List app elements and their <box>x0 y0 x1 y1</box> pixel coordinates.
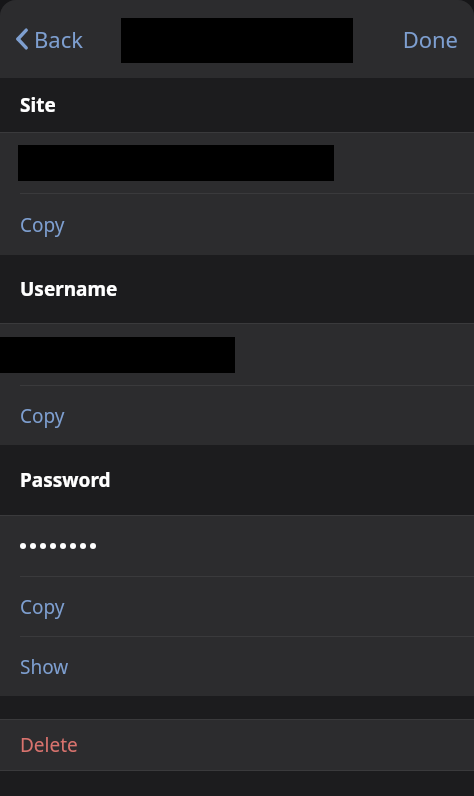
button[interactable]: Hidden password <box>0 516 474 576</box>
button[interactable]: Copy <box>0 194 474 255</box>
staticText: Copy <box>20 403 65 429</box>
button[interactable]: Copy <box>0 386 474 445</box>
staticText: Done <box>402 24 458 54</box>
staticText: Delete <box>20 732 78 758</box>
button[interactable] <box>0 324 474 385</box>
button[interactable]: Back <box>8 18 89 60</box>
staticText: Copy <box>20 594 65 620</box>
staticText: Back <box>34 24 83 54</box>
staticText: Copy <box>20 212 65 238</box>
staticText: Site <box>20 92 56 118</box>
staticText: Username <box>20 276 118 302</box>
button[interactable]: Delete <box>0 720 474 770</box>
staticText: Password <box>20 467 111 493</box>
button[interactable]: Done <box>394 18 466 60</box>
staticText: Show <box>20 654 69 680</box>
button[interactable] <box>0 133 474 193</box>
button[interactable]: Copy <box>0 577 474 636</box>
button[interactable]: Show <box>0 637 474 696</box>
